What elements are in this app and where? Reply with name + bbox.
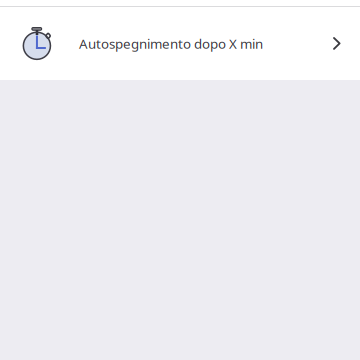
button[interactable]: Autospegnimento dopo X min [0,7,360,80]
staticText: Autospegnimento dopo X min [79,35,263,52]
